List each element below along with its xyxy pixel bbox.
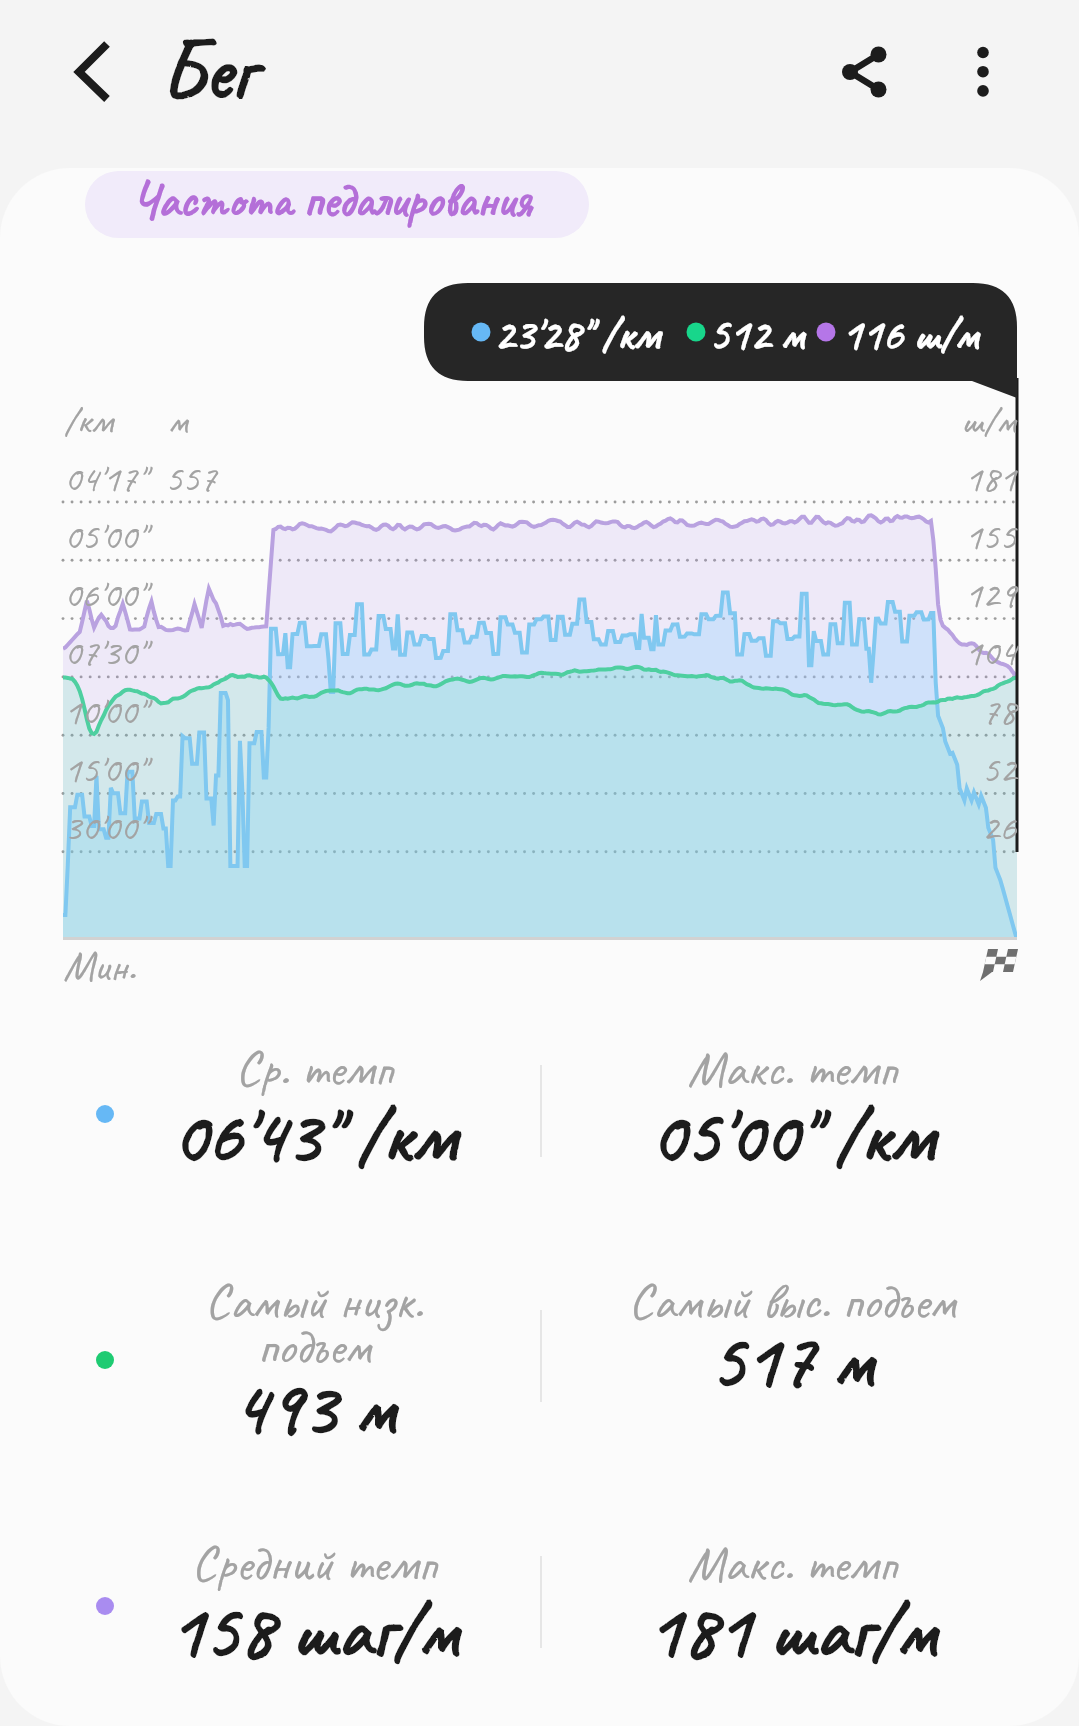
staticText: 104: [316, 629, 1016, 677]
staticText: Средний темп: [0, 1531, 664, 1595]
staticText: 30'00": [64, 804, 764, 852]
staticText: ш/м: [316, 397, 1016, 445]
button[interactable]: Share: [820, 26, 912, 118]
staticText: 158 шаг/м: [0, 1582, 664, 1679]
staticText: 512 м: [709, 306, 1079, 363]
staticText: 129: [316, 571, 1016, 619]
button[interactable]: [0, 991, 540, 1237]
button[interactable]: Back: [44, 37, 114, 107]
button[interactable]: [85, 171, 589, 238]
button[interactable]: [540, 1483, 1079, 1726]
staticText: 52: [316, 746, 1016, 794]
staticText: 26: [316, 804, 1016, 852]
staticText: 10'00": [64, 688, 764, 736]
button[interactable]: [540, 1237, 1079, 1483]
staticText: /км: [64, 397, 764, 445]
staticText: 06'00": [64, 571, 764, 619]
staticText: 05'00" /км: [442, 1087, 1079, 1184]
button[interactable]: [0, 1237, 540, 1483]
staticText: 557: [165, 455, 865, 503]
staticText: Макс. темп: [442, 1531, 1079, 1595]
staticText: 07'30": [64, 629, 764, 677]
button[interactable]: More options: [937, 26, 1029, 118]
staticText: Самый выс. подъем: [442, 1269, 1079, 1333]
staticText: 78: [316, 688, 1016, 736]
staticText: 23'28" /км: [494, 306, 1079, 363]
staticText: 517 м: [442, 1312, 1079, 1409]
staticText: 116 ш/м: [842, 306, 1079, 363]
staticText: 15'00": [64, 746, 764, 794]
staticText: 05'00": [64, 513, 764, 561]
staticText: Частота педалирования: [132, 169, 832, 231]
staticText: 04'17": [64, 455, 764, 503]
staticText: 493 м: [0, 1359, 664, 1456]
staticText: 181: [316, 455, 1016, 503]
staticText: подъем: [0, 1314, 664, 1378]
staticText: 06'43" /км: [0, 1087, 664, 1184]
staticText: 155: [316, 513, 1016, 561]
staticText: м: [168, 397, 868, 445]
button[interactable]: [0, 1483, 540, 1726]
staticText: Макс. темп: [442, 1036, 1079, 1100]
staticText: Ср. темп: [0, 1036, 664, 1100]
staticText: Мин.: [63, 939, 763, 993]
button[interactable]: [540, 991, 1079, 1237]
staticText: Бег: [161, 17, 861, 123]
staticText: Самый низк.: [0, 1269, 664, 1333]
staticText: 181 шаг/м: [442, 1582, 1079, 1679]
